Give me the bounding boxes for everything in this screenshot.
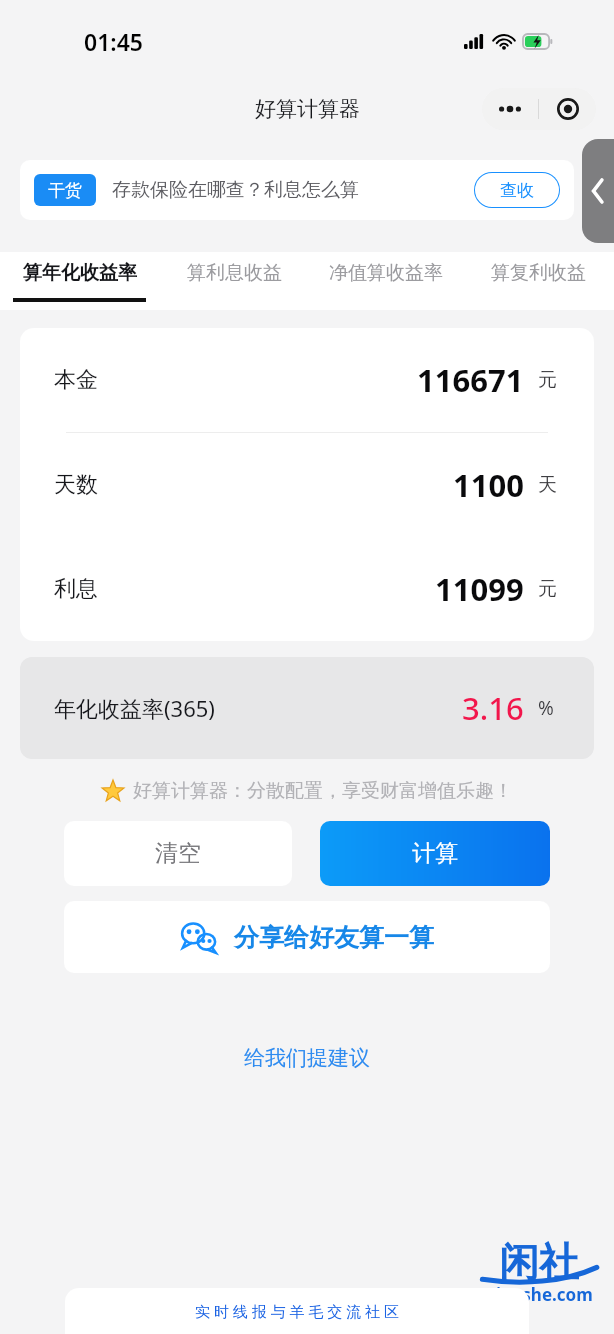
button[interactable]: 给我们提建议 [232, 1039, 382, 1077]
staticText: 本金 [54, 366, 98, 394]
staticText: 利息 [54, 575, 98, 603]
staticText: 天 [538, 473, 557, 497]
staticText: 分享给好友算一算 [234, 922, 434, 953]
button[interactable]: 查收 [474, 172, 560, 208]
button[interactable]: 清空 [64, 821, 292, 886]
staticText: 算利息收益 [187, 261, 282, 285]
staticText: 01:45 [84, 26, 143, 57]
staticText: 存款保险在哪查？利息怎么算 [112, 178, 474, 202]
button[interactable]: 计算 [320, 821, 550, 886]
button[interactable]: 天数 [20, 433, 594, 537]
button[interactable]: 算年化收益率 [0, 252, 158, 310]
staticText: 11099 [435, 568, 524, 610]
staticText: 算年化收益率 [23, 261, 137, 285]
staticText: 算复利收益 [491, 261, 586, 285]
staticText: 好算计算器 [255, 96, 360, 122]
staticText: 好算计算器：分散配置，享受财富增值乐趣！ [133, 779, 513, 803]
button[interactable]: 年化收益率(365) [20, 657, 594, 759]
staticText: 116671 [417, 359, 524, 401]
button[interactable]: More [482, 88, 538, 130]
button[interactable]: 本金 [20, 328, 594, 432]
staticText: 元 [538, 368, 557, 392]
staticText: 元 [538, 577, 557, 601]
staticText: 闲社 [499, 1237, 579, 1283]
staticText: 计算 [412, 839, 458, 868]
button[interactable]: Close [539, 88, 596, 130]
staticText: 给我们提建议 [244, 1045, 370, 1071]
staticText: 实 时 线 报 与 羊 毛 交 流 社 区 [195, 1301, 400, 1321]
button[interactable]: 实 时 线 报 与 羊 毛 交 流 社 区 [65, 1288, 529, 1334]
button[interactable]: 净值算收益率 [310, 252, 462, 310]
button[interactable]: 算复利收益 [462, 252, 614, 310]
button[interactable]: Open drawer [582, 139, 614, 243]
staticText: 干货 [48, 180, 82, 201]
staticText: % [538, 695, 554, 721]
button[interactable]: 算利息收益 [158, 252, 310, 310]
staticText: 3.16 [462, 687, 524, 729]
button[interactable]: 干货 [20, 160, 574, 220]
staticText: 查收 [500, 180, 534, 201]
staticText: 天数 [54, 471, 98, 499]
staticText: 净值算收益率 [329, 261, 443, 285]
button[interactable]: 分享给好友算一算 [64, 901, 550, 973]
staticText: 清空 [155, 839, 201, 868]
staticText: 年化收益率(365) [54, 693, 215, 723]
staticText: 1100 [453, 464, 524, 506]
staticText: xianshe.com [486, 1283, 593, 1306]
button[interactable]: 利息 [20, 537, 594, 641]
